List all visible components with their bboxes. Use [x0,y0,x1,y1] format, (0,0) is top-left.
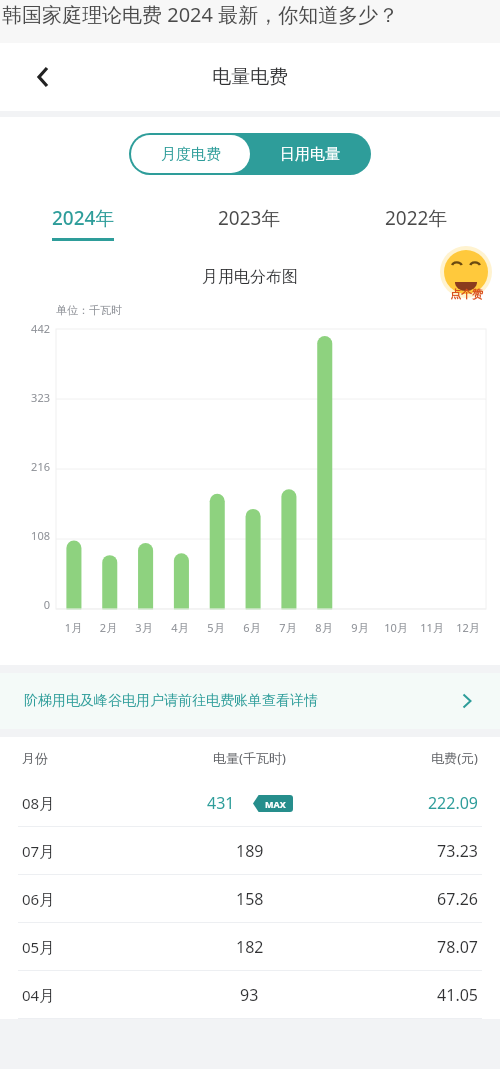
button[interactable]: 07月 [0,827,500,874]
staticText: 182 [236,936,264,958]
staticText: 电量电费 [212,65,288,89]
staticText: 3月 [126,620,162,635]
staticText: 9月 [342,620,378,635]
staticText: 442 [31,321,50,333]
button[interactable]: 阶梯用电及峰谷电用户请前往电费账单查看详情 [0,673,500,729]
staticText: 04月 [22,985,164,1005]
staticText: 431 [207,792,235,814]
staticText: 0 [43,597,50,609]
staticText: 电费(元) [335,749,478,767]
staticText: 41.05 [335,984,478,1006]
staticText: 6月 [234,620,270,635]
staticText: 2月 [91,620,126,635]
button[interactable]: 04月 [0,971,500,1018]
staticText: 7月 [270,620,306,635]
button[interactable]: 日用电量 [250,135,369,173]
staticText: 韩国家庭理论电费 2024 最新，你知道多少？ [2,1,399,28]
staticText: 2024年 [52,205,115,231]
button[interactable]: 2023年 [166,201,333,245]
staticText: 05月 [22,937,164,957]
staticText: 07月 [22,841,164,861]
staticText: 158 [236,888,264,910]
staticText: 78.07 [335,936,478,958]
button[interactable]: Back [26,60,60,94]
staticText: 单位：千瓦时 [56,303,122,317]
staticText: MAX [265,798,286,810]
staticText: 10月 [378,620,414,635]
staticText: 12月 [450,620,486,635]
staticText: 189 [236,840,264,862]
staticText: 323 [31,390,50,402]
staticText: 电量(千瓦时) [164,749,335,767]
staticText: 阶梯用电及峰谷电用户请前往电费账单查看详情 [24,692,318,710]
staticText: 93 [240,984,259,1006]
staticText: 67.26 [335,888,478,910]
staticText: 4月 [162,620,198,635]
button[interactable]: 05月 [0,923,500,970]
staticText: 点个赞 [450,287,483,301]
button[interactable]: 06月 [0,875,500,922]
staticText: 月用电分布图 [0,267,500,287]
staticText: 1月 [56,620,91,635]
button[interactable]: 2022年 [333,201,500,245]
button[interactable]: 月度电费 [131,135,250,173]
staticText: 月份 [22,750,164,766]
staticText: 日用电量 [280,145,340,164]
staticText: 108 [31,528,50,540]
staticText: 11月 [414,620,450,635]
staticText: 2022年 [385,205,448,231]
button[interactable]: 08月 [0,779,500,826]
staticText: 216 [31,459,50,471]
button[interactable]: 2024年 [0,201,166,245]
staticText: 2023年 [218,205,281,231]
button[interactable]: Like [440,249,492,301]
staticText: 06月 [22,889,164,909]
staticText: 8月 [306,620,342,635]
staticText: 5月 [198,620,234,635]
staticText: 08月 [22,793,164,813]
staticText: 222.09 [335,792,478,814]
staticText: 月度电费 [161,145,221,164]
staticText: 73.23 [335,840,478,862]
